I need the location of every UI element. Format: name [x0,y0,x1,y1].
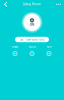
button[interactable]: MODE [23,45,40,58]
button[interactable]: Back [1,1,10,8]
staticText: FAN [46,45,51,48]
button[interactable]: TIMER [6,45,23,58]
button[interactable]: SET TEMPERATURE [15,37,49,42]
staticText: ON [30,23,34,26]
button[interactable]: More options [54,1,63,8]
button[interactable]: FAN [40,45,57,58]
staticText: Living Room [23,2,41,6]
staticText: SET TEMPERATURE [20,38,44,41]
staticText: TIMER [11,45,18,48]
staticText: MODE [28,45,35,48]
